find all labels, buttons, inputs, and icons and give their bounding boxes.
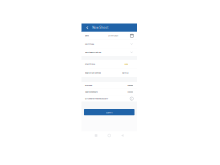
button[interactable]: Click here if not necessary (81, 95, 137, 102)
button[interactable]: Home (105, 131, 113, 139)
staticText: Shift Type (85, 43, 94, 45)
button[interactable]: Approved hours (81, 89, 137, 95)
button[interactable]: Recents (92, 131, 100, 139)
staticText: Registration Type (85, 72, 101, 74)
staticText: Start Time (85, 63, 95, 65)
staticText: Click here if not necessary (85, 97, 108, 100)
button[interactable]: Back (83, 23, 92, 32)
staticText: New Sheet (92, 26, 108, 30)
button[interactable]: Shift Description (81, 48, 137, 56)
button[interactable]: Date (81, 32, 137, 40)
staticText: Worked (85, 84, 92, 87)
staticText: Approved hours (85, 91, 98, 93)
staticText: 08:00 (124, 63, 128, 65)
staticText: Normal (122, 72, 129, 74)
button[interactable]: Start Time (81, 60, 137, 68)
button[interactable]: Shift Type (81, 40, 137, 48)
staticText: 21/07/2021 (108, 34, 118, 37)
button[interactable]: Back (118, 131, 126, 139)
staticText: 00:00:00 (127, 91, 133, 93)
staticText: Date (85, 34, 89, 37)
staticText: 08:00:00 (127, 84, 133, 87)
button[interactable]: Worked (81, 82, 137, 88)
button[interactable]: Registration Type (81, 69, 137, 77)
staticText: Shift Description (85, 51, 101, 53)
staticText: Submit (106, 111, 113, 114)
button[interactable]: Submit (84, 109, 134, 115)
